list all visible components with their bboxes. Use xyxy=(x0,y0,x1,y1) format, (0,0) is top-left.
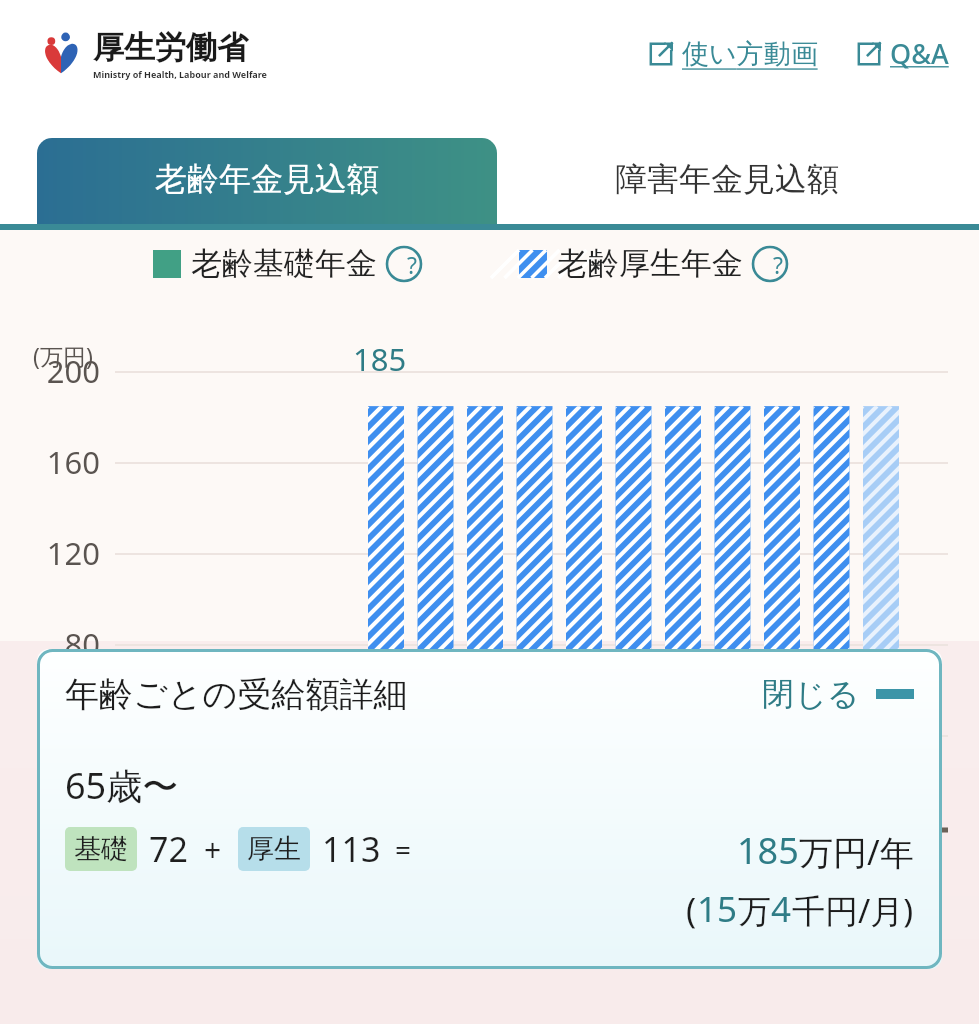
staticText: 基礎 xyxy=(74,832,128,866)
button[interactable]: 厚生労働省ロゴ xyxy=(38,28,267,80)
staticText: 113 xyxy=(322,826,381,872)
staticText: 使い方動画 xyxy=(682,37,818,71)
staticText: ? xyxy=(773,249,783,280)
staticText: = xyxy=(395,830,412,868)
staticText: 40 xyxy=(20,714,100,756)
staticText: 万円/年 xyxy=(799,829,914,875)
staticText: 年齢ごとの受給額詳細 xyxy=(65,673,408,716)
staticText: 老齢厚生年金 xyxy=(557,244,743,283)
other: 厚生労働省ロゴ xyxy=(38,31,84,77)
staticText: 200 xyxy=(20,350,100,392)
staticText: Ministry of Health, Labour and Welfare xyxy=(93,68,267,80)
other: 外部リンク 使い方動画 xyxy=(646,39,676,69)
staticText: 0 xyxy=(20,805,100,847)
button[interactable]: 厚生 xyxy=(247,832,301,866)
staticText: (歳) xyxy=(893,836,937,873)
staticText: 15 xyxy=(697,885,738,933)
other: 老齢厚生年金 の説明 xyxy=(751,245,789,283)
staticText: 160 xyxy=(20,441,100,483)
staticText: + xyxy=(204,829,222,870)
staticText: 75 xyxy=(850,834,886,876)
staticText: 厚生労働省 xyxy=(93,28,248,67)
staticText: 4 xyxy=(771,885,792,933)
other: 閉じる xyxy=(876,684,914,704)
staticText: 万 xyxy=(738,891,771,933)
button[interactable]: 基礎 xyxy=(74,832,128,866)
staticText: 障害年金見込額 xyxy=(615,159,839,199)
button[interactable]: 外部リンク Q&A xyxy=(854,35,949,72)
button[interactable]: 老齢厚生年金 xyxy=(519,244,827,283)
staticText: 厚生 xyxy=(247,832,301,866)
staticText: 千円/月) xyxy=(792,888,914,933)
staticText: Q&A xyxy=(890,35,949,72)
staticText: 閉じる xyxy=(762,674,860,714)
staticText: 185 xyxy=(353,338,407,380)
button[interactable]: 閉じる xyxy=(762,674,914,714)
staticText: 65 xyxy=(357,834,393,876)
staticText: 老齢年金見込額 xyxy=(155,159,379,199)
staticText: 72 xyxy=(149,826,188,872)
button[interactable]: 老齢基礎年金 xyxy=(153,244,461,283)
staticText: 80 xyxy=(20,623,100,665)
staticText: 老齢基礎年金 xyxy=(191,244,377,283)
staticText: (万円) xyxy=(33,340,93,371)
button[interactable]: 老齢年金見込額 xyxy=(37,138,497,230)
button[interactable]: 外部リンク 使い方動画 xyxy=(646,37,818,71)
staticText: 185 xyxy=(737,826,799,875)
staticText: ( xyxy=(686,887,697,933)
button[interactable]: 障害年金見込額 xyxy=(497,138,957,230)
staticText: 60 xyxy=(112,834,148,876)
staticText: 120 xyxy=(20,532,100,574)
staticText: ? xyxy=(407,249,417,280)
other: 老齢基礎年金 の説明 xyxy=(385,245,423,283)
other: 外部リンク Q&A xyxy=(854,39,884,69)
staticText: 65歳〜 xyxy=(65,761,179,810)
